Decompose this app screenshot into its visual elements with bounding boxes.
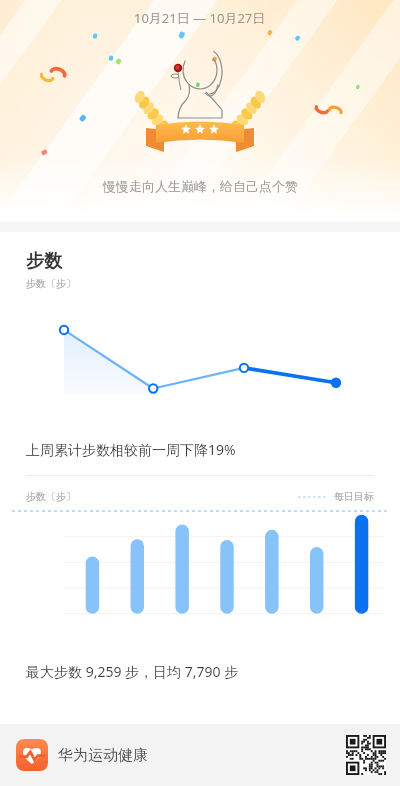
staticText: 步数 bbox=[26, 250, 62, 273]
staticText: 华为运动健康 bbox=[58, 746, 148, 765]
staticText: 最大步数 9,259 步，日均 7,790 步 bbox=[26, 662, 239, 681]
staticText: 步数〔步〕 bbox=[26, 277, 76, 290]
staticText: 步数〔步〕 bbox=[26, 490, 76, 503]
staticText: 10月21日 — 10月27日 bbox=[134, 9, 266, 27]
staticText: 慢慢走向人生巅峰，给自己点个赞 bbox=[103, 178, 298, 194]
staticText: 每日目标 bbox=[334, 490, 374, 503]
other: 二维码 bbox=[346, 735, 386, 775]
staticText: 上周累计步数相较前一周下降19% bbox=[26, 440, 236, 459]
button[interactable]: 华为运动健康 图标 bbox=[0, 724, 400, 786]
other: 华为运动健康 图标 bbox=[16, 739, 48, 771]
